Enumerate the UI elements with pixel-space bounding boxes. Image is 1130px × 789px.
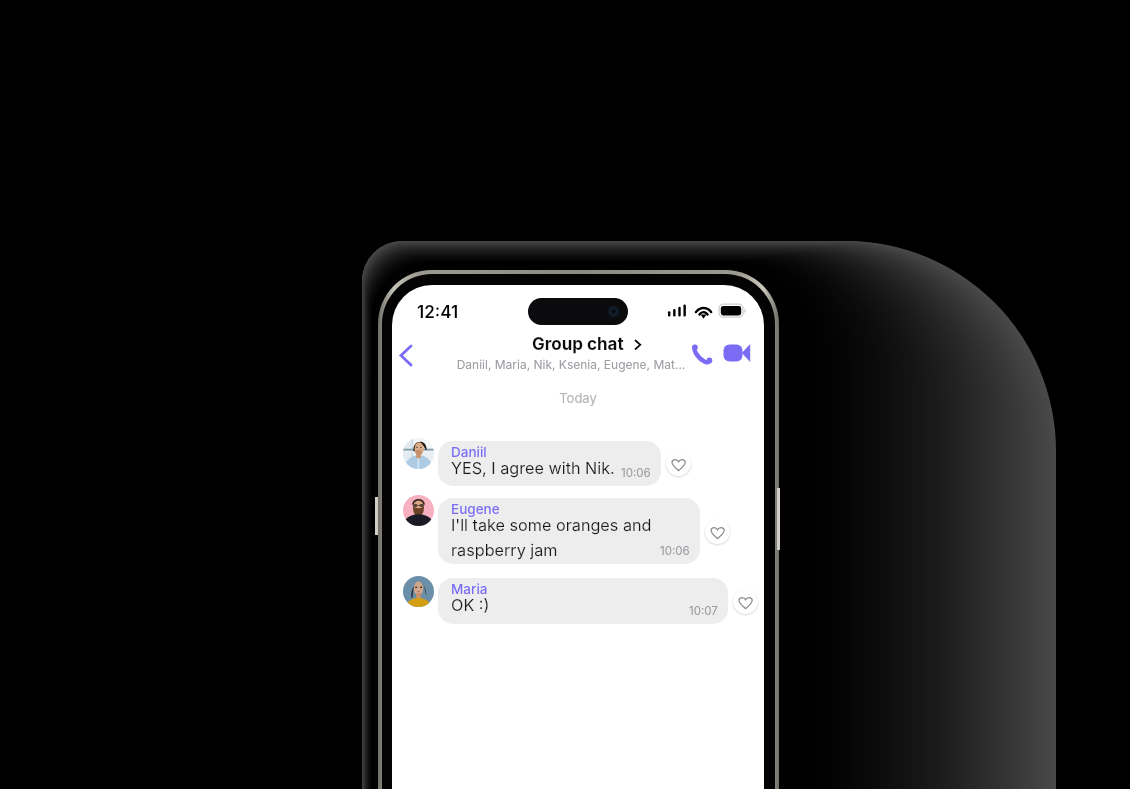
staticText: 10:06	[621, 466, 651, 480]
staticText: 12:41	[417, 302, 459, 323]
staticText: OK :)	[451, 595, 490, 615]
staticText: I'll take some oranges and	[451, 515, 652, 535]
button[interactable]: Like	[733, 589, 758, 614]
button[interactable]: Back	[392, 337, 430, 375]
button[interactable]: Video call	[723, 340, 755, 368]
button[interactable]: Group chat	[470, 333, 686, 355]
button[interactable]: Voice call	[690, 340, 718, 368]
button[interactable]: Maria	[438, 578, 728, 624]
staticText: Daniil	[451, 444, 487, 460]
staticText: Today	[392, 390, 764, 406]
staticText: raspberry jam	[451, 540, 558, 560]
staticText: YES, I agree with Nik.	[451, 458, 615, 478]
button[interactable]: Eugene	[438, 498, 700, 564]
staticText: Group chat	[532, 334, 624, 355]
button[interactable]: Daniil	[438, 441, 661, 486]
staticText: 10:07	[689, 604, 718, 618]
staticText: 10:06	[660, 544, 690, 558]
staticText: Daniil, Maria, Nik, Ksenia, Eugene, Mat…	[392, 357, 750, 372]
button[interactable]: Like	[666, 451, 691, 476]
button[interactable]: Like	[705, 519, 730, 544]
staticText: Eugene	[451, 501, 500, 517]
staticText: Maria	[451, 581, 488, 597]
